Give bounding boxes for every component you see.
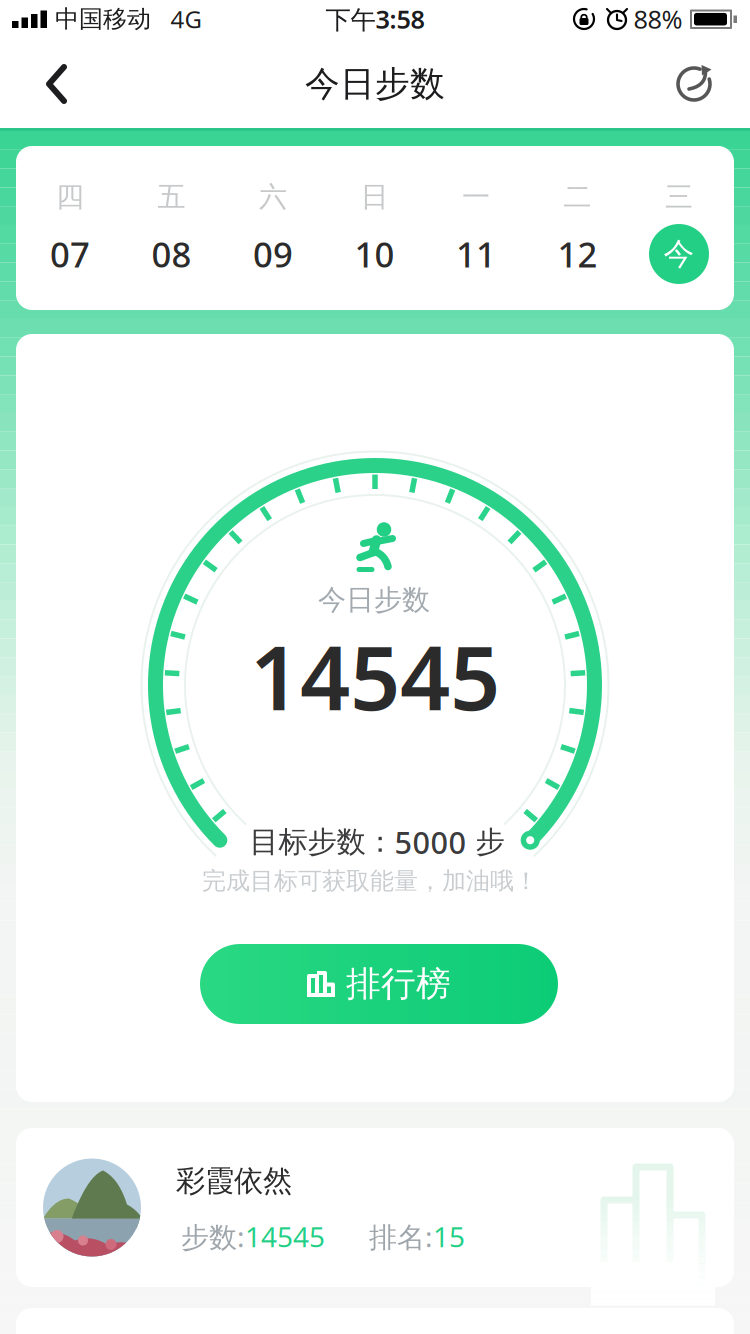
staticText: 今日步数 — [305, 63, 445, 105]
button[interactable]: 日 — [326, 161, 422, 291]
staticText: 11 — [456, 231, 496, 277]
button[interactable]: 五 — [123, 161, 219, 291]
staticText: 完成目标可获取能量，加油哦！ — [202, 866, 538, 896]
staticText: 步数: — [181, 1218, 245, 1255]
staticText: 排行榜 — [346, 963, 451, 1005]
button[interactable]: 彩霞依然 — [16, 1128, 734, 1287]
staticText: 六 — [259, 180, 287, 214]
button[interactable]: Back — [10, 40, 98, 128]
button[interactable]: 一 — [428, 161, 524, 291]
staticText: 14545 — [245, 1218, 325, 1255]
staticText: 五 — [157, 180, 185, 214]
staticText: 08 — [151, 231, 191, 277]
staticText: 三 — [665, 180, 693, 214]
staticText: 中国移动 — [55, 4, 151, 34]
staticText: 4G — [170, 3, 201, 35]
staticText: 今 — [663, 235, 694, 273]
staticText: 12 — [557, 231, 597, 277]
staticText: 步 — [466, 824, 504, 860]
button[interactable]: 四 — [22, 161, 118, 291]
staticText: 07 — [50, 231, 90, 277]
staticText: 88% — [633, 2, 682, 36]
staticText: 09 — [253, 231, 293, 277]
staticText: 15 — [433, 1218, 465, 1255]
button[interactable]: 今 — [649, 224, 709, 284]
staticText: 二 — [563, 180, 591, 214]
staticText: 5000 — [394, 822, 466, 862]
button[interactable]: 二 — [529, 161, 625, 291]
staticText: 10 — [354, 231, 394, 277]
staticText: 今日步数 — [318, 583, 430, 617]
button[interactable]: 六 — [225, 161, 321, 291]
staticText: 下午3:58 — [325, 2, 424, 36]
staticText: 排名: — [369, 1218, 433, 1255]
staticText: 彩霞依然 — [176, 1163, 292, 1199]
button[interactable]: Refresh — [650, 40, 738, 128]
staticText: 14545 — [250, 618, 500, 734]
staticText: 一 — [462, 180, 490, 214]
staticText: 四 — [56, 180, 84, 214]
staticText: 目标步数： — [249, 824, 394, 860]
staticText: 日 — [360, 180, 388, 214]
button[interactable]: 排行榜 — [200, 944, 558, 1024]
